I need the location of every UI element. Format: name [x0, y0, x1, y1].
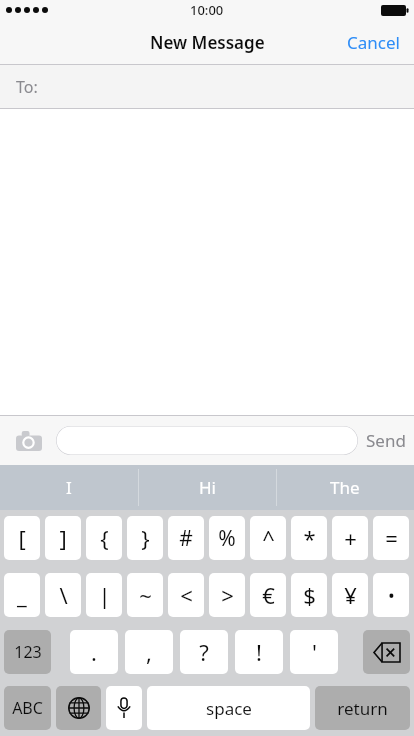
button[interactable]: Hi — [138, 465, 276, 510]
button[interactable]: + — [332, 516, 368, 560]
staticText: ? — [199, 637, 209, 667]
button[interactable]: } — [127, 516, 163, 560]
staticText: | — [98, 580, 111, 610]
button[interactable]: Send — [360, 416, 412, 465]
button[interactable]: ¥ — [332, 573, 368, 617]
staticText: To: — [16, 76, 38, 98]
button[interactable]: [ — [4, 516, 40, 560]
staticText: space — [206, 697, 252, 720]
staticText: > — [221, 580, 234, 610]
button[interactable] — [56, 426, 358, 455]
button[interactable]: * — [291, 516, 327, 560]
button[interactable]: . — [70, 630, 118, 674]
button[interactable]: ! — [235, 630, 283, 674]
button[interactable]: % — [209, 516, 245, 560]
button[interactable]: { — [86, 516, 122, 560]
staticText: ABC — [12, 697, 43, 719]
staticText: • — [388, 583, 395, 608]
button[interactable]: • — [373, 573, 409, 617]
staticText: + — [344, 523, 357, 553]
staticText: [ — [18, 523, 26, 553]
staticText: # — [179, 524, 193, 553]
button[interactable]: ] — [45, 516, 81, 560]
button[interactable]: The — [276, 465, 414, 510]
staticText: The — [330, 476, 360, 499]
button[interactable]: ABC — [4, 686, 51, 730]
button[interactable]: € — [250, 573, 286, 617]
button[interactable]: ^ — [250, 516, 286, 560]
button[interactable]: ~ — [127, 573, 163, 617]
button[interactable]: ? — [180, 630, 228, 674]
button[interactable]: \ — [45, 573, 81, 617]
button[interactable]: Cancel — [333, 21, 414, 64]
button[interactable]: Backspace — [363, 630, 410, 674]
button[interactable]: = — [373, 516, 409, 560]
staticText: € — [262, 580, 275, 610]
staticText: _ — [17, 580, 27, 610]
staticText: New Message — [150, 31, 265, 54]
button[interactable]: To: — [0, 65, 414, 108]
staticText: $ — [303, 580, 316, 610]
button[interactable]: $ — [291, 573, 327, 617]
button[interactable]: | — [86, 573, 122, 617]
staticText: I — [66, 476, 72, 499]
staticText: Send — [366, 429, 406, 452]
staticText: { — [100, 523, 109, 553]
staticText: = — [385, 523, 398, 553]
button[interactable]: > — [209, 573, 245, 617]
staticText: * — [303, 523, 316, 553]
button[interactable]: Camera — [10, 416, 48, 465]
button[interactable]: I — [0, 465, 138, 510]
staticText: return — [337, 697, 388, 720]
button[interactable]: 123 — [4, 630, 51, 674]
staticText: % — [218, 524, 236, 553]
staticText: \ — [59, 580, 68, 610]
button[interactable]: _ — [4, 573, 40, 617]
button[interactable]: < — [168, 573, 204, 617]
staticText: Cancel — [347, 31, 400, 54]
staticText: ¥ — [344, 580, 357, 610]
button[interactable]: Change keyboard — [56, 686, 101, 730]
staticText: 10:00 — [190, 1, 224, 19]
button[interactable]: return — [315, 686, 410, 730]
staticText: Hi — [199, 476, 216, 499]
staticText: , — [146, 637, 152, 667]
staticText: . — [91, 637, 97, 667]
staticText: < — [180, 580, 193, 610]
button[interactable]: ' — [290, 630, 338, 674]
staticText: 123 — [14, 641, 42, 663]
staticText: ~ — [139, 580, 152, 610]
button[interactable]: # — [168, 516, 204, 560]
button[interactable]: Dictate — [106, 686, 142, 730]
staticText: } — [141, 523, 150, 553]
staticText: ' — [312, 637, 317, 667]
button[interactable]: space — [147, 686, 310, 730]
staticText: ! — [256, 637, 262, 667]
staticText: ] — [59, 523, 67, 553]
staticText: ^ — [262, 523, 275, 553]
button[interactable]: , — [125, 630, 173, 674]
